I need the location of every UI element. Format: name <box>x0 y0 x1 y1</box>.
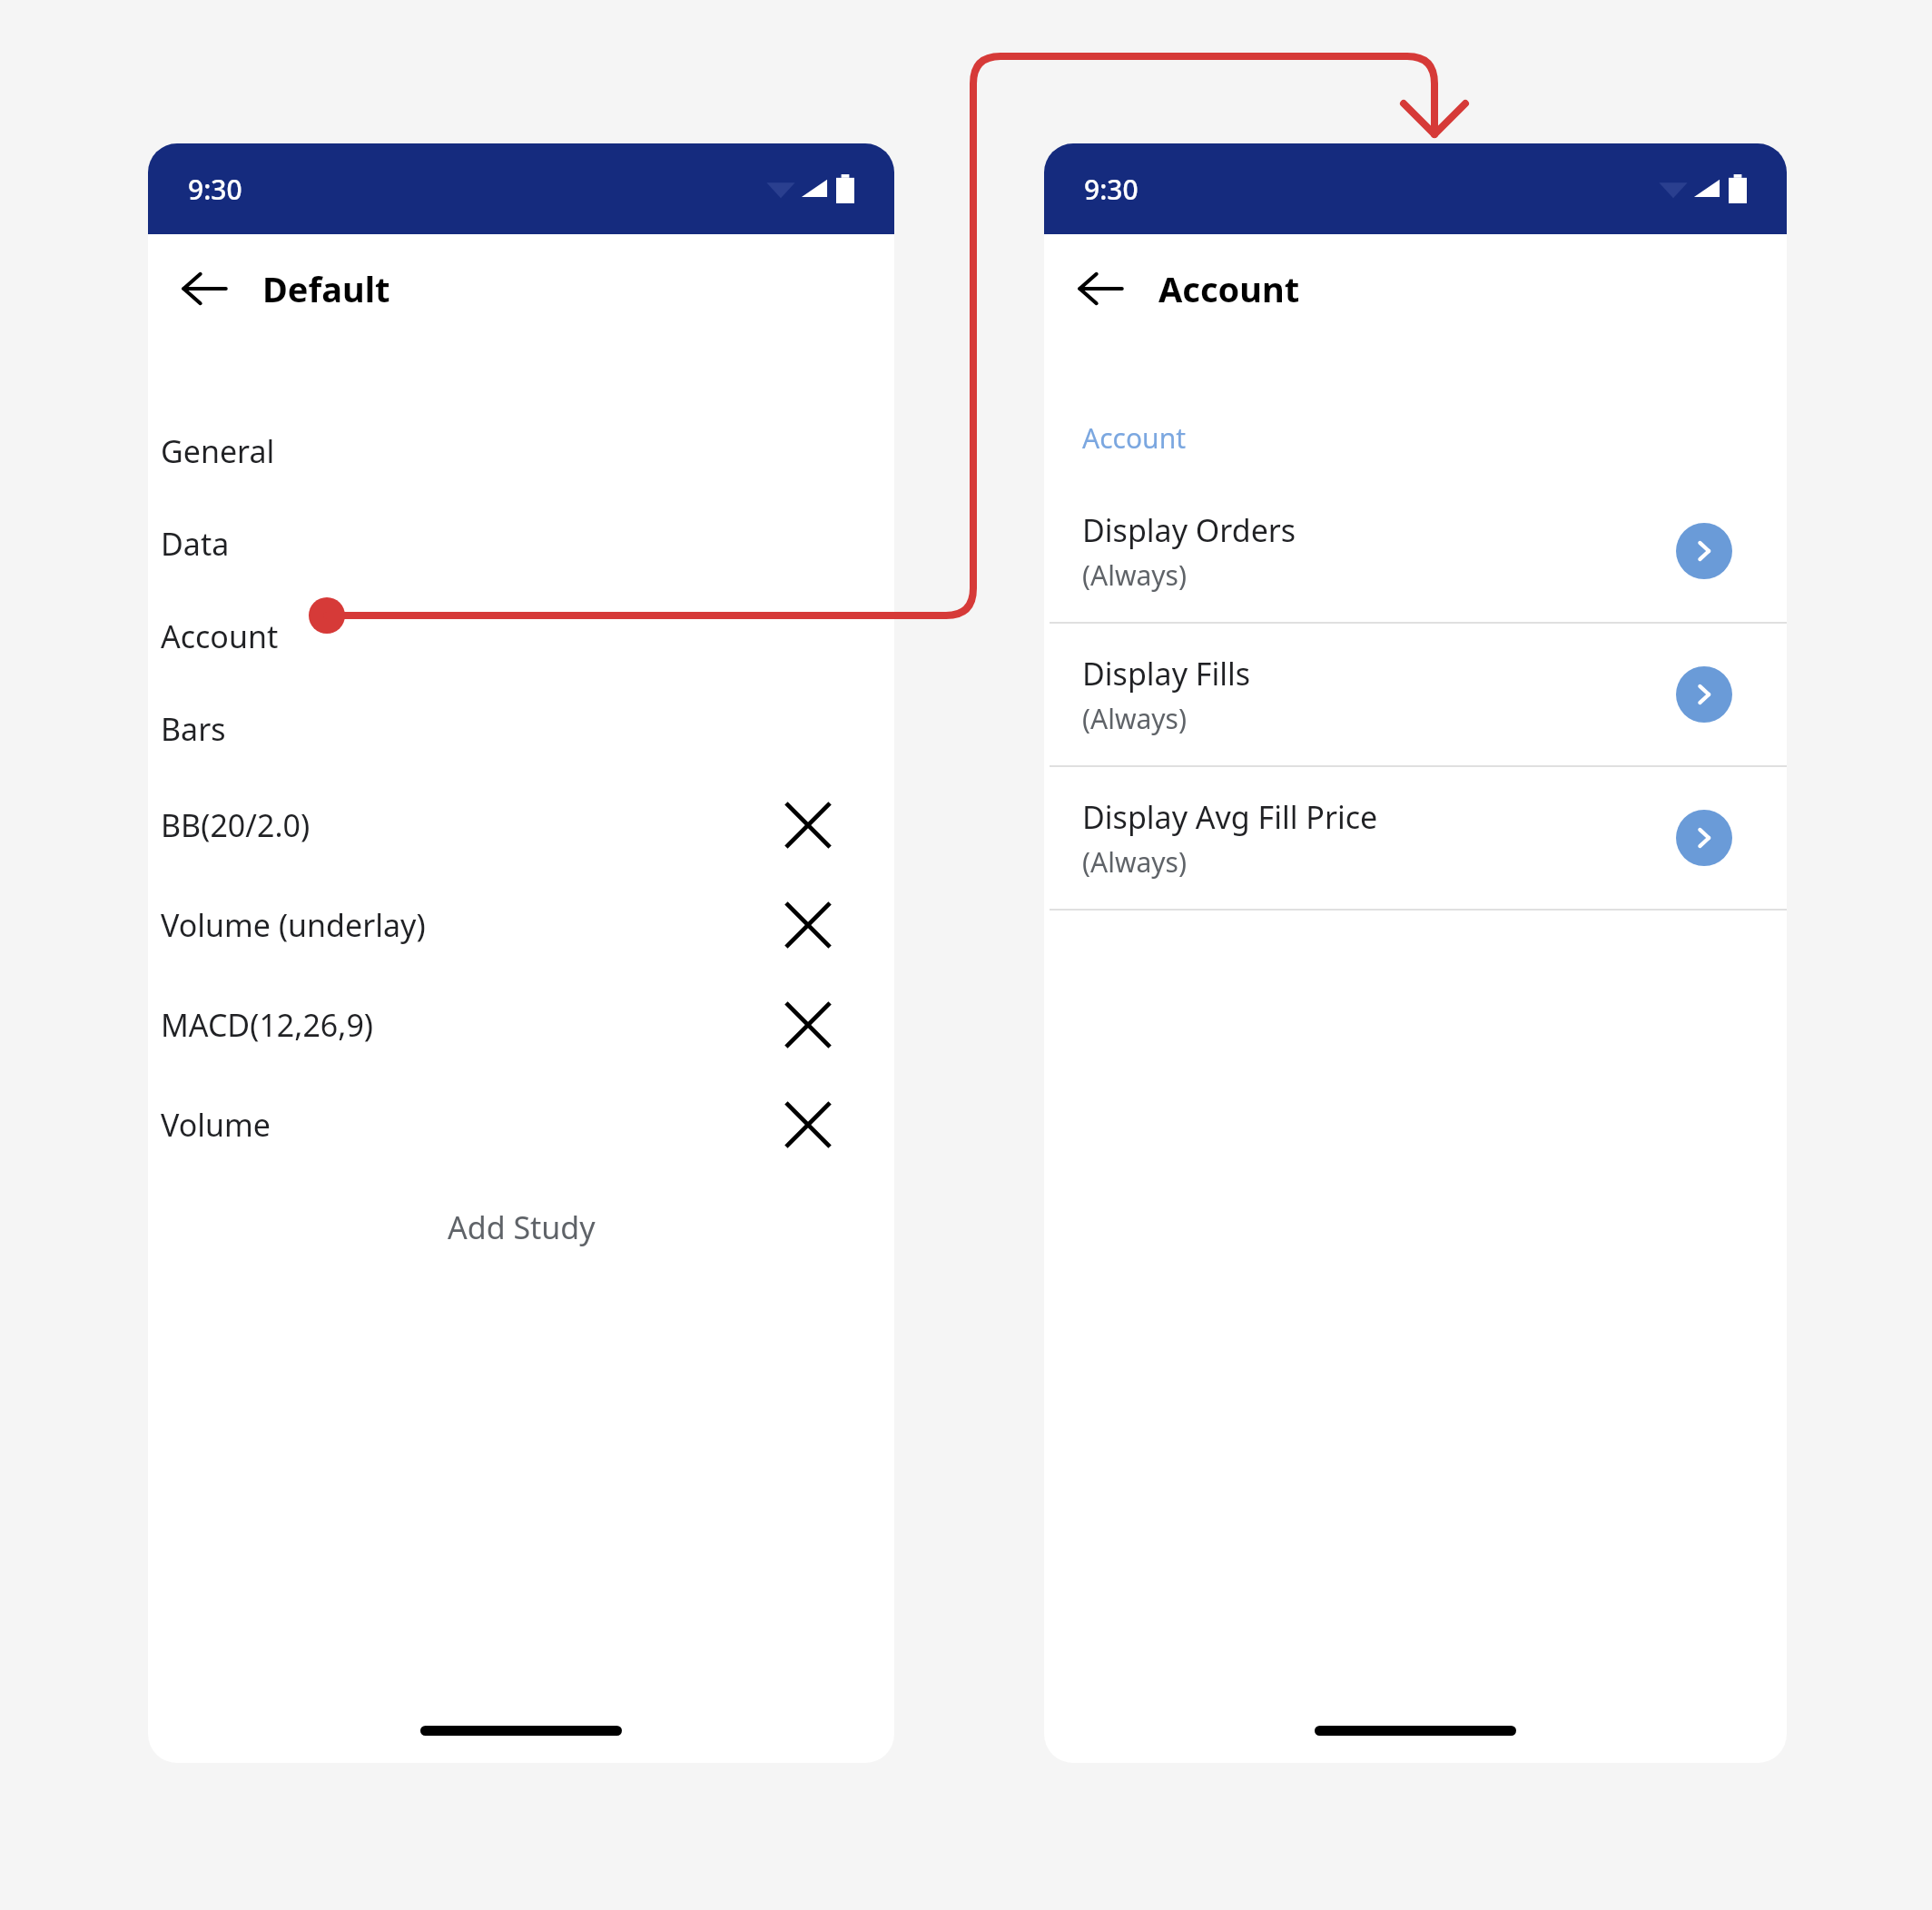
button[interactable]: Open Display Orders <box>1676 523 1732 579</box>
button[interactable]: Remove Volume (underlay) <box>776 893 840 957</box>
button[interactable]: Remove MACD(12,26,9) <box>776 993 840 1057</box>
staticText: BB(20/2.0) <box>161 804 310 846</box>
button[interactable]: Display Orders <box>1044 480 1787 622</box>
staticText: Bars <box>161 708 226 750</box>
staticText: Account <box>1158 265 1300 312</box>
staticText: Display Avg Fill Price <box>1082 796 1378 838</box>
staticText: (Always) <box>1082 556 1187 594</box>
button[interactable]: Volume (underlay) <box>148 875 894 975</box>
button[interactable]: Display Fills <box>1044 624 1787 765</box>
staticText: General <box>161 430 275 472</box>
button[interactable]: Account <box>148 590 894 683</box>
button[interactable]: Open Display Avg Fill Price <box>1676 810 1732 866</box>
button[interactable]: Remove Volume <box>776 1093 840 1157</box>
staticText: (Always) <box>1082 700 1187 737</box>
button[interactable]: General <box>148 405 894 497</box>
staticText: Account <box>161 615 279 657</box>
staticText: 9:30 <box>188 171 242 208</box>
button[interactable]: Display Avg Fill Price <box>1044 767 1787 909</box>
staticText: Default <box>262 265 390 312</box>
staticText: Display Orders <box>1082 509 1296 551</box>
staticText: Display Fills <box>1082 653 1251 694</box>
staticText: Data <box>161 523 230 565</box>
button[interactable]: Add Study <box>148 1191 894 1264</box>
staticText: Volume <box>161 1104 271 1146</box>
button[interactable]: Bars <box>148 683 894 775</box>
button[interactable]: MACD(12,26,9) <box>148 975 894 1075</box>
staticText: Account <box>1082 419 1187 457</box>
button[interactable]: Remove BB(20/2.0) <box>776 793 840 857</box>
button[interactable]: Open Display Fills <box>1676 666 1732 723</box>
staticText: Volume (underlay) <box>161 904 426 946</box>
button[interactable]: Back <box>170 254 239 323</box>
staticText: 9:30 <box>1084 171 1138 208</box>
button[interactable]: Back <box>1066 254 1135 323</box>
staticText: MACD(12,26,9) <box>161 1004 374 1046</box>
staticText: (Always) <box>1082 843 1187 881</box>
button[interactable]: Volume <box>148 1075 894 1175</box>
button[interactable]: Data <box>148 497 894 590</box>
button[interactable]: BB(20/2.0) <box>148 775 894 875</box>
staticText: Add Study <box>448 1206 596 1248</box>
